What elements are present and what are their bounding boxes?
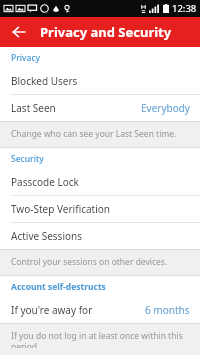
button[interactable]: Back xyxy=(6,19,32,45)
staticText: Privacy xyxy=(11,52,41,64)
button[interactable]: If you're away for xyxy=(0,297,200,323)
staticText: If you do not log in at least once withi… xyxy=(11,330,192,348)
staticText: Account self-destructs xyxy=(11,281,106,293)
staticText: Security xyxy=(11,153,44,165)
staticText: 12:38 xyxy=(172,2,197,15)
button[interactable]: Active Sessions xyxy=(0,223,200,249)
staticText: Everybody xyxy=(141,101,190,115)
staticText: Last Seen xyxy=(11,101,141,115)
button[interactable]: Last Seen xyxy=(0,95,200,121)
staticText: Privacy and Security xyxy=(40,23,172,41)
staticText: Active Sessions xyxy=(11,229,190,243)
staticText: Control your sessions on other devices. xyxy=(11,256,168,268)
staticText: 6 months xyxy=(145,303,190,317)
staticText: Passcode Lock xyxy=(11,175,190,189)
button[interactable]: Two-Step Verification xyxy=(0,196,200,222)
staticText: Blocked Users xyxy=(11,74,190,88)
staticText: Two-Step Verification xyxy=(11,202,190,216)
staticText: If you're away for xyxy=(11,303,145,317)
staticText: Change who can see your Last Seen time. xyxy=(11,128,177,140)
button[interactable]: Blocked Users xyxy=(0,68,200,94)
button[interactable]: Passcode Lock xyxy=(0,169,200,195)
